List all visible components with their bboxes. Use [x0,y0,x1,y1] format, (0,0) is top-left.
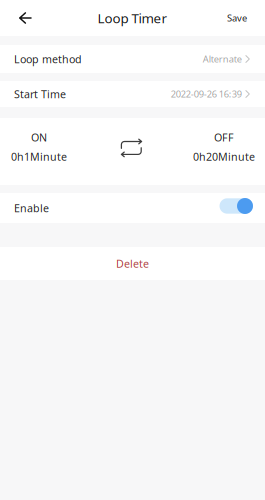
staticText: 0h20Minute [193,149,255,164]
button[interactable]: Save [213,0,265,36]
staticText: 2022-09-26 16:39 [171,88,242,100]
staticText: Delete [116,256,149,271]
staticText: OFF [214,130,234,144]
staticText: Alternate [203,53,242,65]
button[interactable]: Start Time [0,81,265,107]
button[interactable]: Back [0,0,46,36]
staticText: Save [227,12,247,24]
staticText: Loop method [14,52,82,66]
button[interactable]: Delete [0,247,265,280]
staticText: Start Time [14,87,66,101]
staticText: 0h1Minute [11,149,67,164]
staticText: Enable [14,201,49,215]
staticText: ON [31,130,47,144]
button[interactable]: Enable [219,198,253,218]
staticText: Loop Timer [97,9,167,27]
button[interactable]: Loop method [0,45,265,73]
